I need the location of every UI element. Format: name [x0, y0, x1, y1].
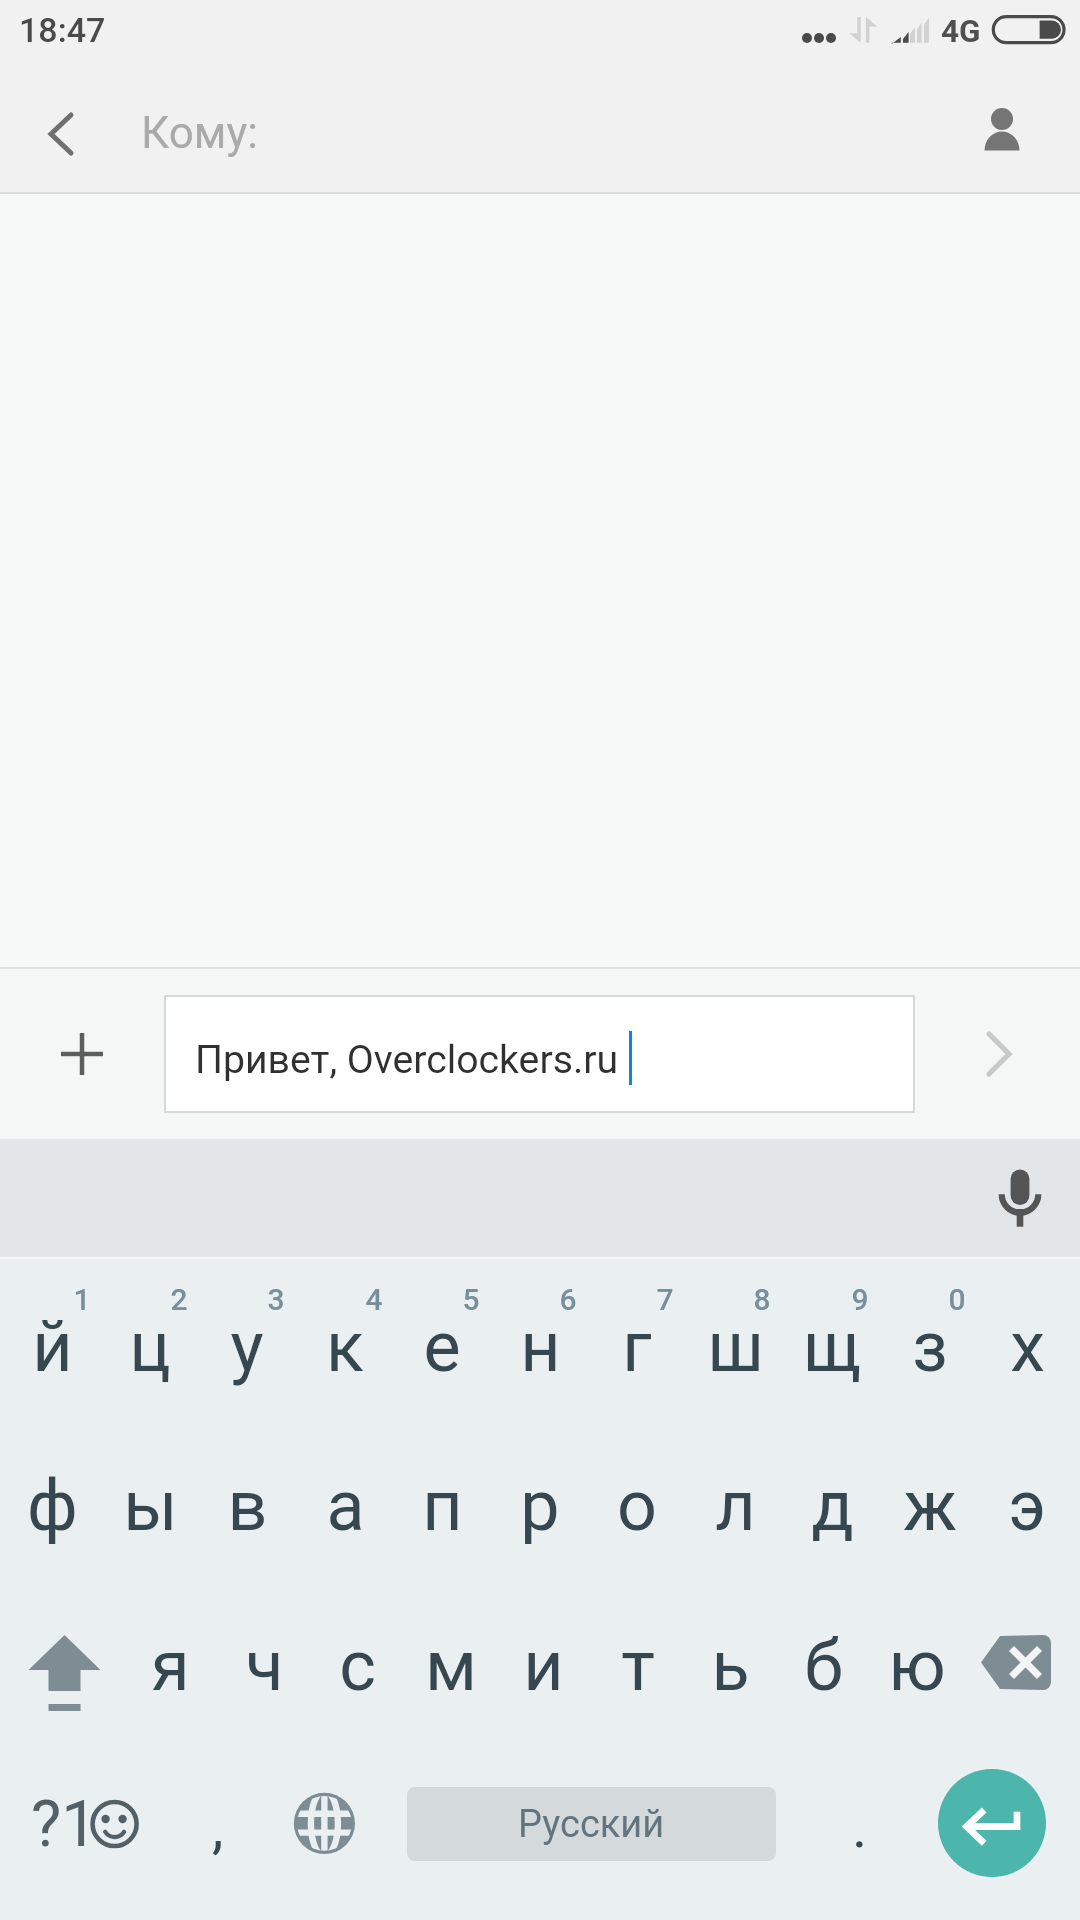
staticText: ы [123, 1465, 178, 1547]
button[interactable]: я [124, 1591, 217, 1741]
staticText: ?1 [31, 1787, 98, 1862]
button[interactable]: щ [783, 1272, 881, 1422]
button[interactable]: Back [0, 81, 110, 191]
staticText: д [811, 1465, 854, 1547]
staticText: Русский [518, 1802, 665, 1847]
button[interactable]: х [978, 1272, 1076, 1422]
button[interactable]: п [393, 1431, 491, 1581]
button[interactable]: э [978, 1431, 1076, 1581]
staticText: р [520, 1465, 560, 1547]
staticText: 5 [462, 1282, 480, 1317]
button[interactable]: в [198, 1431, 296, 1581]
staticText: ч [245, 1625, 284, 1707]
staticText: 1 [73, 1282, 91, 1317]
button[interactable]: Send [944, 999, 1054, 1109]
staticText: 18:47 [19, 10, 106, 50]
staticText: 4 [365, 1282, 383, 1317]
staticText: ж [903, 1465, 957, 1547]
button[interactable]: ?1 [0, 1749, 160, 1899]
button[interactable]: с [311, 1591, 404, 1741]
button[interactable]: у [198, 1272, 296, 1422]
staticText: б [804, 1625, 843, 1707]
button[interactable]: ь [684, 1591, 777, 1741]
staticText: л [715, 1465, 756, 1547]
button[interactable]: Привет, Overclockers.ru [164, 995, 915, 1113]
staticText: в [227, 1465, 268, 1547]
button[interactable]: т [591, 1591, 684, 1741]
button[interactable]: д [783, 1431, 881, 1581]
button[interactable]: ю [870, 1591, 963, 1741]
button[interactable]: н [491, 1272, 589, 1422]
staticText: я [151, 1625, 190, 1707]
button[interactable]: м [404, 1591, 497, 1741]
button[interactable]: ф [3, 1431, 101, 1581]
staticText: 4G [941, 13, 981, 50]
button[interactable]: г [588, 1272, 686, 1422]
button[interactable]: и [497, 1591, 590, 1741]
button[interactable]: л [686, 1431, 784, 1581]
button[interactable]: й [3, 1272, 101, 1422]
button[interactable]: ж [881, 1431, 979, 1581]
staticText: 7 [656, 1282, 674, 1317]
button[interactable]: Voice input [960, 1148, 1060, 1248]
button[interactable]: , [170, 1749, 265, 1899]
button[interactable]: Contacts [970, 81, 1080, 191]
staticText: г [622, 1306, 652, 1388]
button[interactable]: е [393, 1272, 491, 1422]
staticText: 0 [948, 1282, 966, 1317]
staticText: ю [888, 1625, 946, 1707]
button[interactable]: а [296, 1431, 394, 1581]
staticText: а [326, 1465, 365, 1547]
staticText: с [339, 1625, 376, 1707]
staticText: Привет, Overclockers.ru [195, 1037, 619, 1083]
button[interactable]: к [296, 1272, 394, 1422]
button[interactable]: Русский [407, 1787, 776, 1861]
button[interactable]: р [491, 1431, 589, 1581]
staticText: и [523, 1625, 564, 1707]
staticText: й [32, 1306, 73, 1388]
staticText: , [212, 1793, 224, 1861]
staticText: 9 [851, 1282, 869, 1317]
staticText: у [230, 1306, 264, 1388]
button[interactable]: ы [101, 1431, 199, 1581]
staticText: 6 [559, 1282, 577, 1317]
button[interactable]: о [588, 1431, 686, 1581]
button[interactable]: ц [101, 1272, 199, 1422]
button[interactable]: Кому: [120, 80, 940, 192]
button[interactable]: з [881, 1272, 979, 1422]
button[interactable]: Backspace [962, 1588, 1070, 1738]
staticText: з [912, 1306, 948, 1388]
button[interactable]: б [777, 1591, 870, 1741]
staticText: т [621, 1625, 655, 1707]
staticText: н [520, 1306, 561, 1388]
staticText: ф [27, 1465, 78, 1547]
staticText: э [1008, 1465, 1046, 1547]
staticText: о [617, 1465, 657, 1547]
button[interactable]: ч [218, 1591, 311, 1741]
staticText: х [1010, 1306, 1045, 1388]
staticText: ц [129, 1306, 171, 1388]
button[interactable]: Enter [938, 1769, 1046, 1877]
staticText: . [852, 1793, 868, 1861]
staticText: ь [711, 1625, 750, 1707]
staticText: ш [707, 1306, 764, 1388]
staticText: Кому: [141, 107, 258, 159]
staticText: к [326, 1306, 364, 1388]
button[interactable]: Change keyboard language [277, 1749, 372, 1899]
staticText: 8 [753, 1282, 771, 1317]
staticText: щ [803, 1306, 861, 1388]
button[interactable]: Add attachment [22, 994, 142, 1114]
staticText: 3 [267, 1282, 285, 1317]
staticText: 2 [170, 1282, 188, 1317]
button[interactable]: . [812, 1749, 907, 1899]
staticText: п [422, 1465, 463, 1547]
button[interactable]: ш [686, 1272, 784, 1422]
button[interactable]: Shift [10, 1588, 125, 1738]
staticText: м [425, 1625, 477, 1707]
staticText: е [423, 1306, 461, 1388]
